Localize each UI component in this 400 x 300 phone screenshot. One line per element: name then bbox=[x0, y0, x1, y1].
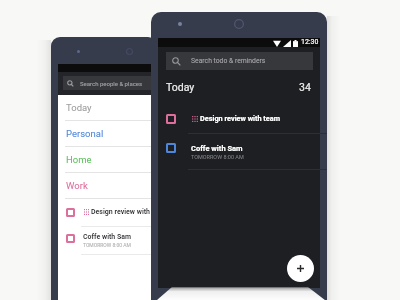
button[interactable]: Design review with team bbox=[58, 199, 157, 227]
staticText: TOMORROW 8:00 AM bbox=[191, 154, 244, 160]
button[interactable]: Add task bbox=[287, 255, 314, 282]
staticText: TOMORROW 8:00 AM bbox=[83, 242, 131, 248]
staticText: 12:30 bbox=[301, 38, 319, 46]
staticText: Personal bbox=[66, 128, 104, 139]
button[interactable]: Search todo & reminders bbox=[166, 52, 313, 70]
staticText: Today bbox=[66, 102, 92, 113]
button[interactable]: Home bbox=[58, 147, 157, 173]
staticText: 34 bbox=[299, 81, 311, 93]
button[interactable]: Coffe with Sam bbox=[158, 134, 320, 170]
button[interactable]: Personal bbox=[58, 121, 157, 147]
staticText: Design review with team bbox=[200, 114, 281, 123]
staticText: Work bbox=[66, 180, 88, 191]
button[interactable]: Work bbox=[58, 173, 157, 199]
button[interactable]: Coffe with Sam bbox=[58, 227, 157, 255]
button[interactable]: Today bbox=[58, 95, 157, 121]
staticText: Home bbox=[66, 154, 92, 165]
staticText: Design review with team bbox=[91, 208, 157, 216]
staticText: Search todo & reminders bbox=[191, 57, 266, 65]
button[interactable]: Design review with team bbox=[158, 103, 320, 134]
staticText: Coffe with Sam bbox=[191, 144, 243, 153]
staticText: Today bbox=[166, 81, 299, 93]
staticText: Search people & places bbox=[80, 80, 143, 87]
button[interactable]: Search people & places bbox=[63, 76, 157, 90]
staticText: Coffe with Sam bbox=[83, 233, 132, 241]
